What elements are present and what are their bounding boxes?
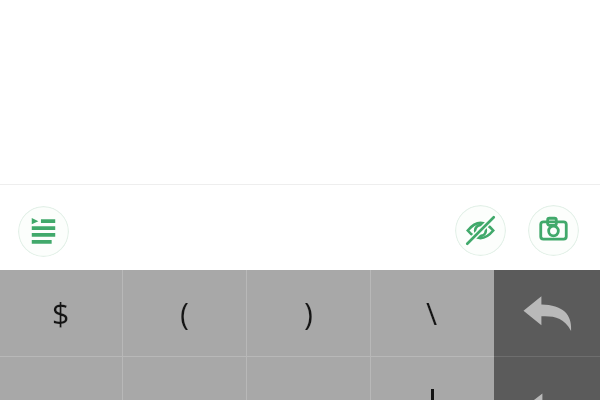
button[interactable]: Backspace: [494, 270, 600, 356]
button[interactable]: Formatting options: [18, 206, 69, 257]
button[interactable]: Take photo: [528, 205, 579, 256]
staticText: ): [304, 293, 313, 334]
staticText: $: [52, 293, 70, 334]
button[interactable]: [370, 357, 494, 400]
staticText: \: [426, 293, 438, 334]
button[interactable]: \: [370, 270, 494, 356]
button[interactable]: $: [0, 270, 122, 356]
button[interactable]: (: [122, 270, 246, 356]
button[interactable]: Enter: [494, 357, 600, 400]
button[interactable]: ): [246, 270, 370, 356]
staticText: (: [180, 293, 189, 334]
button[interactable]: Hide preview: [455, 205, 506, 256]
